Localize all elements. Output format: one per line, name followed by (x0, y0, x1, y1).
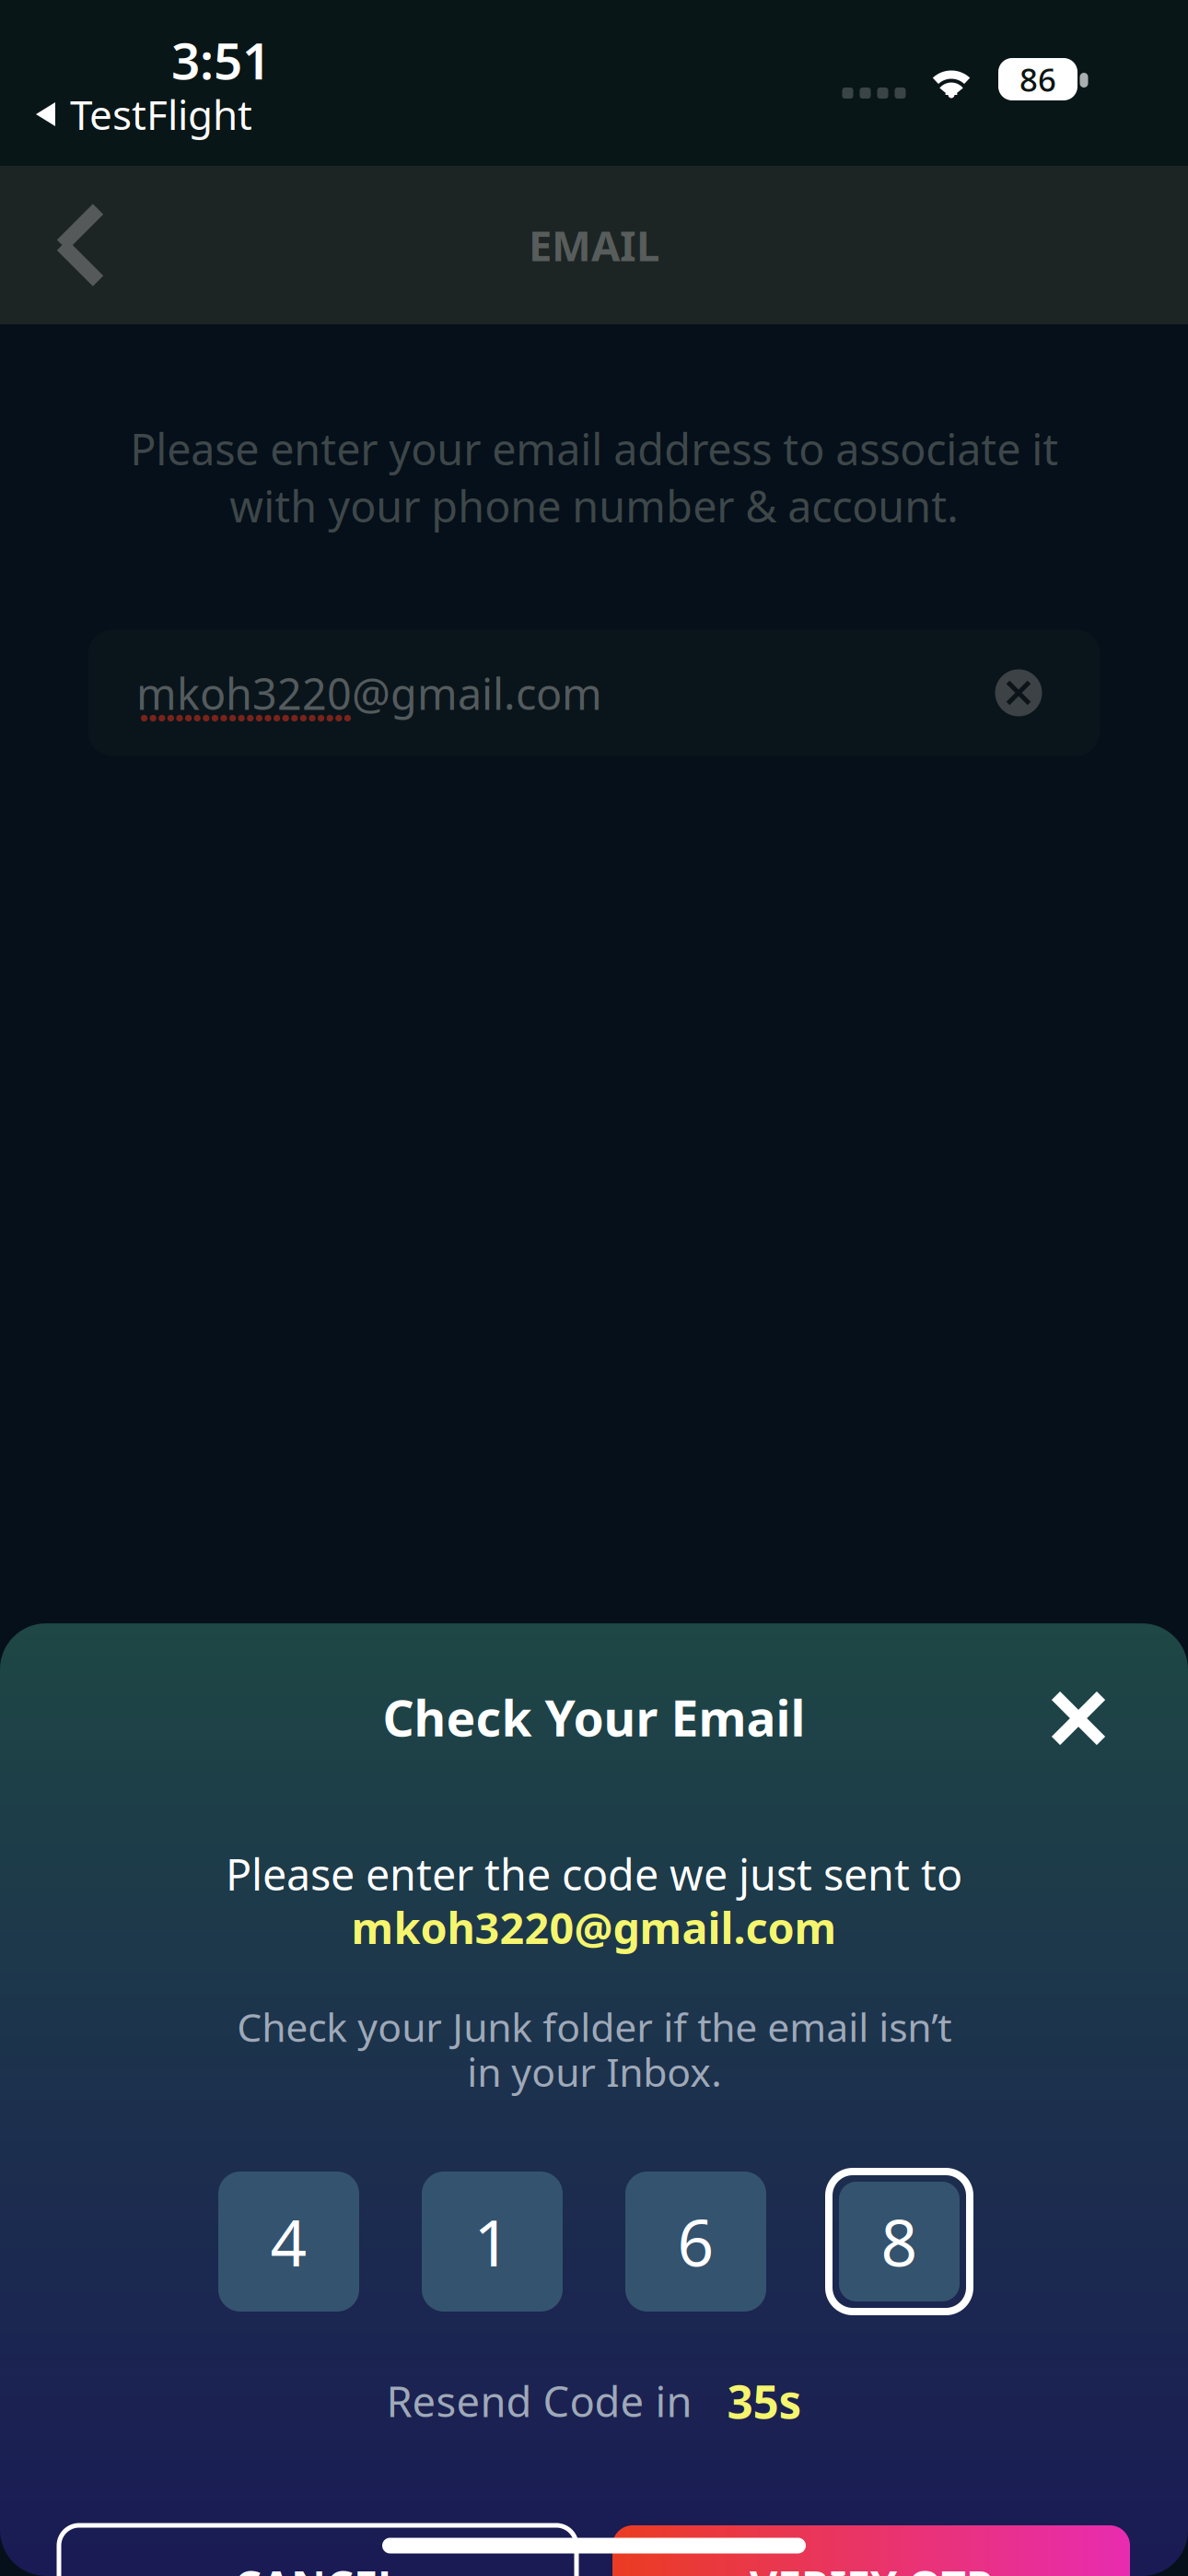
button[interactable]: CANCEL (59, 2525, 577, 2576)
staticText: Resend Code in (386, 2373, 692, 2429)
staticText: 8 (881, 2199, 918, 2284)
staticText: Check Your Email (383, 1685, 805, 1750)
staticText: VERIFY OTP (750, 2557, 993, 2576)
button[interactable]: Close (1027, 1667, 1130, 1770)
staticText: 1 (474, 2199, 511, 2284)
button[interactable]: 1 (422, 2172, 563, 2312)
staticText: Please enter the code we just sent to (226, 1845, 962, 1903)
staticText: 86 (1019, 58, 1056, 100)
button[interactable]: Clear text (977, 651, 1060, 734)
button[interactable]: 4 (218, 2172, 359, 2312)
staticText: 3:51 (171, 26, 271, 93)
staticText: 35s (727, 2371, 802, 2431)
staticText: mkoh3220@gmail.com (136, 665, 602, 722)
staticText: Please enter your email address to assoc… (130, 420, 1058, 534)
staticText: 4 (270, 2199, 307, 2284)
staticText: TestFlight (70, 87, 252, 141)
staticText: 6 (677, 2199, 714, 2284)
button[interactable]: VERIFY OTP (612, 2525, 1130, 2576)
button[interactable]: 6 (625, 2172, 766, 2312)
button[interactable]: 8 (829, 2172, 970, 2312)
staticText: mkoh3220@gmail.com (351, 1899, 837, 1956)
button[interactable]: mkoh3220@gmail.com (88, 630, 1100, 756)
staticText: CANCEL (234, 2557, 402, 2576)
staticText: EMAIL (529, 217, 659, 273)
staticText: Check your Junk folder if the email isn’… (237, 2000, 951, 2097)
button[interactable]: Back (0, 166, 160, 324)
